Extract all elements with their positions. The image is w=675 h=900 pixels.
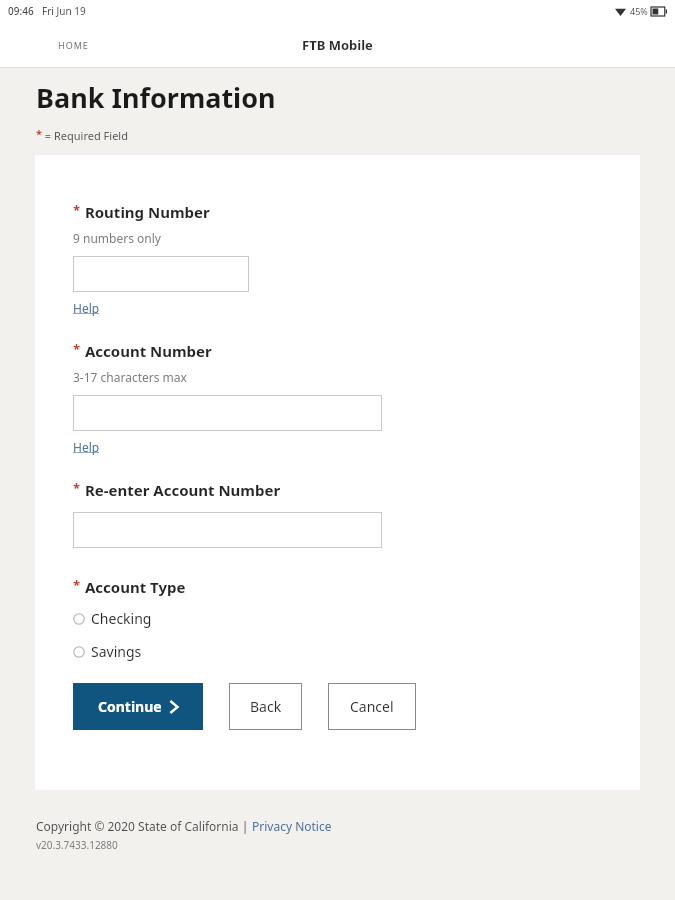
- staticText: Savings: [91, 642, 142, 661]
- staticText: Account Number: [81, 341, 212, 361]
- staticText: *: [73, 340, 81, 358]
- button[interactable]: Text input field: [73, 512, 382, 548]
- button[interactable]: Privacy Notice: [252, 818, 332, 834]
- staticText: Copyright © 2020 State of California |: [36, 818, 252, 834]
- button[interactable]: Continue: [73, 683, 203, 730]
- staticText: Fri Jun 19: [42, 4, 86, 18]
- staticText: 09:46: [8, 4, 34, 18]
- staticText: Help: [73, 439, 100, 455]
- staticText: Routing Number: [81, 202, 210, 222]
- button[interactable]: Back: [229, 683, 302, 730]
- staticText: Privacy Notice: [252, 818, 332, 834]
- staticText: 45%: [630, 5, 648, 17]
- button[interactable]: HOME: [46, 31, 101, 59]
- staticText: *: [73, 479, 81, 497]
- button[interactable]: Checking: [73, 607, 152, 630]
- staticText: *: [73, 201, 81, 219]
- staticText: 3-17 characters max: [73, 369, 187, 385]
- staticText: Back: [250, 697, 282, 716]
- staticText: 9 numbers only: [73, 230, 161, 246]
- button[interactable]: Text input field: [73, 256, 249, 292]
- staticText: Re-enter Account Number: [81, 480, 281, 500]
- button[interactable]: Cancel: [328, 683, 416, 730]
- staticText: v20.3.7433.12880: [36, 838, 118, 852]
- button[interactable]: Help: [73, 300, 100, 316]
- staticText: HOME: [58, 39, 89, 51]
- button[interactable]: Text input field: [73, 395, 382, 431]
- staticText: Account Type: [81, 577, 186, 597]
- staticText: = Required Field: [42, 128, 128, 143]
- button[interactable]: Help: [73, 439, 100, 455]
- button[interactable]: Savings: [73, 640, 142, 663]
- staticText: Continue: [98, 697, 162, 716]
- staticText: *: [73, 576, 81, 594]
- staticText: Checking: [91, 609, 152, 628]
- staticText: Help: [73, 300, 100, 316]
- staticText: FTB Mobile: [302, 36, 373, 54]
- staticText: Cancel: [350, 697, 394, 716]
- staticText: *: [36, 126, 42, 141]
- staticText: Bank Information: [36, 79, 276, 116]
